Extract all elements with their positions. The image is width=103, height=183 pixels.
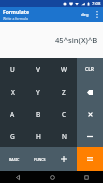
staticText: FUNCS — [34, 157, 46, 162]
staticText: Write a formula — [3, 16, 28, 21]
staticText: 45^sin(X)^B — [55, 35, 98, 45]
button[interactable]: Back — [0, 171, 35, 183]
staticText: B — [36, 110, 41, 119]
button[interactable]: V — [25, 58, 51, 81]
staticText: 7:08 — [92, 1, 101, 7]
staticText: Y — [36, 88, 40, 97]
staticText: X — [11, 88, 15, 97]
button[interactable]: B — [25, 103, 51, 125]
button[interactable]: U — [0, 58, 25, 81]
staticText: A — [10, 110, 15, 119]
button[interactable]: BASIC — [0, 147, 25, 171]
button[interactable]: X — [0, 81, 25, 103]
button[interactable]: W — [51, 58, 77, 81]
button[interactable]: Subtract — [77, 125, 103, 147]
button[interactable]: C — [51, 103, 77, 125]
button[interactable]: deg — [79, 9, 91, 21]
staticText: Formulate — [3, 9, 29, 16]
button[interactable]: Backspace — [77, 81, 103, 103]
staticText: deg — [81, 12, 89, 18]
button[interactable]: G — [0, 125, 25, 147]
button[interactable]: Add — [51, 147, 77, 171]
staticText: BASIC — [9, 157, 20, 162]
button[interactable]: Z — [51, 81, 77, 103]
staticText: Z — [62, 88, 66, 97]
button[interactable]: Y — [25, 81, 51, 103]
staticText: C — [62, 110, 67, 119]
button[interactable]: N — [51, 125, 77, 147]
staticText: G — [10, 132, 15, 141]
staticText: V — [36, 65, 40, 74]
button[interactable]: Recents — [69, 171, 103, 183]
button[interactable]: Clear — [77, 58, 103, 81]
button[interactable]: A — [0, 103, 25, 125]
staticText: H — [36, 132, 41, 141]
staticText: U — [10, 65, 15, 74]
staticText: CLR — [85, 66, 95, 73]
staticText: W — [61, 65, 68, 74]
button[interactable]: FUNCS — [25, 147, 51, 171]
staticText: N — [62, 132, 67, 141]
button[interactable]: Equals — [77, 147, 103, 171]
button[interactable]: Home — [35, 171, 69, 183]
button[interactable]: More options — [91, 7, 102, 22]
button[interactable]: H — [25, 125, 51, 147]
button[interactable]: Multiply — [77, 103, 103, 125]
